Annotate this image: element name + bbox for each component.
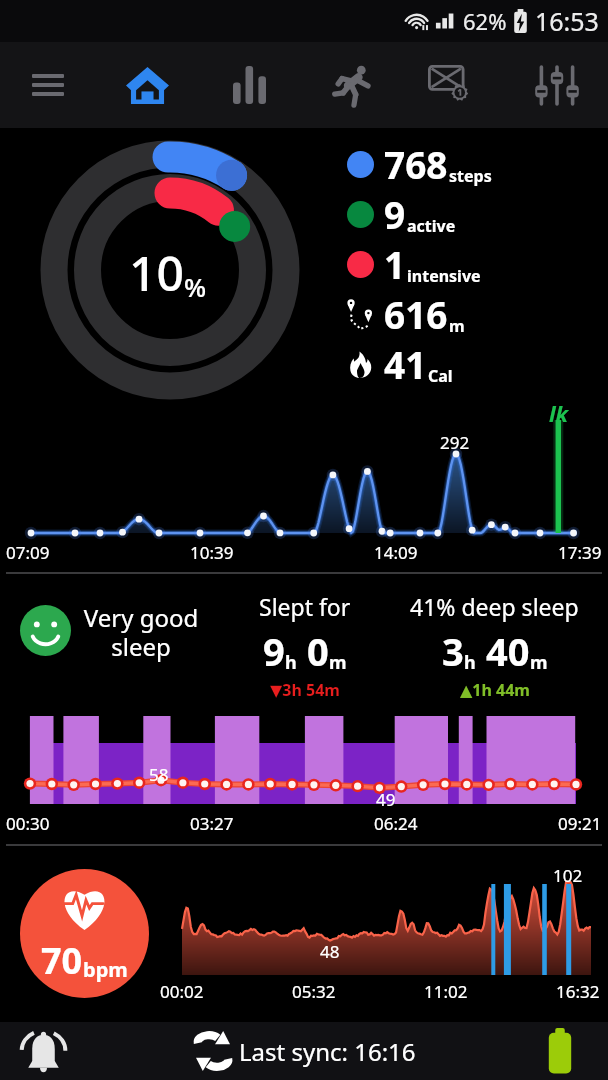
staticText: 768 [384, 139, 448, 189]
staticText: 06:24 [374, 812, 418, 835]
staticText: 10 [129, 240, 184, 305]
staticText: 40 [486, 625, 530, 677]
staticText: 58 [149, 763, 169, 786]
staticText: lk [549, 398, 569, 428]
staticText: 16:53 [535, 4, 599, 38]
staticText: Last sync: 16:16 [239, 1035, 416, 1068]
staticText: 00:30 [6, 812, 50, 835]
staticText: Very good sleep [77, 601, 205, 663]
button[interactable]: Alarm [0, 1022, 86, 1080]
staticText: 00:02 [160, 980, 204, 1003]
staticText: 16:32 [556, 980, 600, 1003]
staticText: 9 [384, 189, 406, 239]
staticText: 102 [553, 864, 583, 887]
staticText: 49 [376, 788, 396, 811]
button[interactable]: Home [102, 42, 204, 128]
staticText: 09:21 [558, 812, 602, 835]
staticText: 3 [442, 625, 464, 677]
staticText: 41% deep sleep [410, 591, 579, 622]
staticText: m [449, 315, 465, 337]
button[interactable]: Statistics [204, 42, 305, 128]
staticText: 9 [263, 625, 285, 677]
staticText: 70 [41, 936, 83, 985]
button[interactable]: Battery [512, 1022, 608, 1080]
staticText: 41 [384, 339, 427, 389]
staticText: 17:39 [558, 541, 602, 564]
staticText: 03:27 [190, 812, 234, 835]
staticText: % [184, 269, 207, 304]
button[interactable]: Menu [0, 42, 102, 128]
staticText: 10:39 [190, 541, 234, 564]
staticText: 05:32 [292, 980, 336, 1003]
button[interactable]: Last sync: 16:16 [86, 1022, 512, 1080]
staticText: active [407, 215, 456, 237]
staticText: intensive [407, 265, 481, 287]
staticText: steps [449, 165, 492, 187]
staticText: 1 [384, 239, 406, 289]
staticText: Slept for [259, 591, 351, 622]
button[interactable]: Messages [406, 42, 507, 128]
staticText: ▼3h 54m [270, 679, 340, 701]
staticText: 616 [384, 289, 448, 339]
staticText: m [329, 650, 347, 675]
button[interactable]: 70 [20, 869, 149, 998]
staticText: h [285, 650, 297, 675]
staticText: 11:02 [424, 980, 468, 1003]
staticText: ▲1h 44m [460, 679, 530, 701]
button[interactable]: Workout [305, 42, 406, 128]
staticText: 292 [440, 431, 470, 454]
staticText: h [464, 650, 476, 675]
staticText: Cal [428, 365, 453, 387]
staticText: 14:09 [374, 541, 418, 564]
staticText: 48 [320, 940, 340, 963]
staticText: 07:09 [6, 541, 50, 564]
staticText: 62% [463, 6, 507, 36]
staticText: 0 [307, 625, 329, 677]
staticText: bpm [83, 956, 128, 983]
button[interactable]: Settings [507, 42, 608, 128]
staticText: m [530, 650, 548, 675]
